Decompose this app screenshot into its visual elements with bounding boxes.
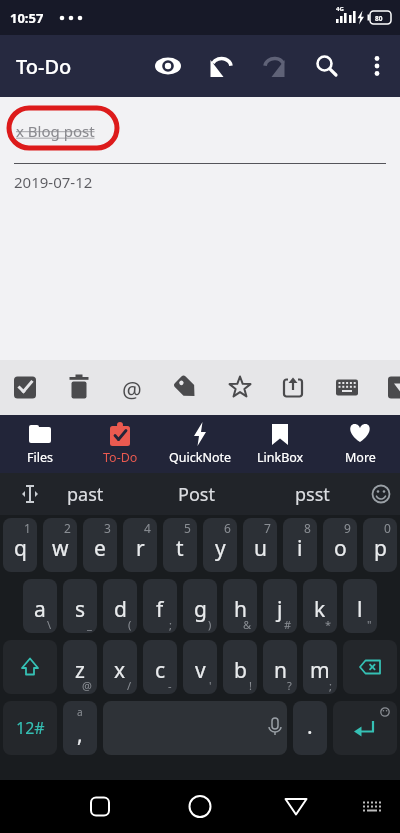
button[interactable] xyxy=(53,360,106,415)
button[interactable] xyxy=(72,780,128,833)
button[interactable] xyxy=(3,640,57,694)
button[interactable]: j xyxy=(263,579,297,633)
staticText: f xyxy=(156,595,164,624)
staticText: 6 xyxy=(224,520,231,536)
button[interactable]: @ xyxy=(118,374,146,402)
button[interactable]: 12# xyxy=(3,701,57,755)
button[interactable]: Files xyxy=(0,415,80,473)
staticText: / xyxy=(127,678,132,693)
button[interactable] xyxy=(103,701,287,755)
button[interactable]: m xyxy=(303,640,337,694)
staticText: b xyxy=(234,656,247,685)
staticText: g xyxy=(194,595,207,624)
button[interactable]: n xyxy=(263,640,297,694)
staticText: a xyxy=(34,595,46,624)
button[interactable]: e xyxy=(83,518,117,572)
staticText: j xyxy=(277,595,283,624)
staticText: x xyxy=(114,656,126,685)
button[interactable]: past xyxy=(45,473,125,515)
staticText: 2019-07-12 xyxy=(14,172,93,192)
button[interactable] xyxy=(172,780,228,833)
button[interactable]: v xyxy=(183,640,217,694)
button[interactable] xyxy=(268,780,324,833)
button[interactable] xyxy=(247,35,300,97)
staticText: 10:57 xyxy=(10,9,44,27)
button[interactable]: f xyxy=(143,579,177,633)
button[interactable]: , xyxy=(63,701,97,755)
button[interactable]: psst xyxy=(272,473,352,515)
button[interactable]: p xyxy=(363,518,397,572)
staticText: ! xyxy=(249,678,252,693)
button[interactable] xyxy=(350,473,400,515)
button[interactable]: y xyxy=(203,518,237,572)
staticText: 12# xyxy=(16,717,45,739)
staticText: ; xyxy=(169,617,172,632)
button[interactable]: q xyxy=(3,518,37,572)
staticText: 8 xyxy=(304,520,311,536)
button[interactable]: More xyxy=(320,415,400,473)
button[interactable] xyxy=(0,360,53,415)
button[interactable]: QuickNote xyxy=(160,415,240,473)
button[interactable]: i xyxy=(283,518,317,572)
button[interactable]: a xyxy=(23,579,57,633)
staticText: ( xyxy=(128,617,132,632)
staticText: To-Do xyxy=(103,449,138,466)
button[interactable] xyxy=(353,35,400,97)
button[interactable]: h xyxy=(223,579,257,633)
button[interactable]: r xyxy=(123,518,157,572)
button[interactable]: x xyxy=(103,640,137,694)
button[interactable]: . xyxy=(293,701,327,755)
button[interactable]: g xyxy=(183,579,217,633)
staticText: LinkBox xyxy=(257,449,304,466)
button[interactable]: s xyxy=(63,579,97,633)
button[interactable] xyxy=(141,35,194,97)
staticText: 5 xyxy=(184,520,191,536)
button[interactable] xyxy=(300,35,353,97)
staticText: 4 xyxy=(144,520,151,536)
staticText: # xyxy=(284,617,292,632)
staticText: l xyxy=(357,595,363,624)
staticText: @ xyxy=(122,374,142,402)
button[interactable]: z xyxy=(63,640,97,694)
button[interactable] xyxy=(375,360,400,415)
staticText: 80 xyxy=(375,14,383,23)
button[interactable] xyxy=(0,473,56,515)
staticText: p xyxy=(374,534,387,563)
staticText: - xyxy=(168,678,172,693)
staticText: 0 xyxy=(384,520,391,536)
button[interactable] xyxy=(159,360,213,415)
button[interactable] xyxy=(343,640,397,694)
button[interactable] xyxy=(194,35,247,97)
staticText: psst xyxy=(295,482,330,507)
button[interactable]: LinkBox xyxy=(240,415,320,473)
staticText: 4G xyxy=(336,5,344,13)
button[interactable]: l xyxy=(343,579,377,633)
staticText: & xyxy=(243,617,252,632)
staticText: m xyxy=(310,656,330,685)
button[interactable]: x Blog post xyxy=(0,97,400,163)
button[interactable]: b xyxy=(223,640,257,694)
staticText: More xyxy=(345,449,376,466)
button[interactable] xyxy=(351,780,391,833)
button[interactable]: u xyxy=(243,518,277,572)
staticText: 2 xyxy=(64,520,71,536)
button[interactable]: w xyxy=(43,518,77,572)
button[interactable] xyxy=(106,360,159,415)
button[interactable] xyxy=(321,360,375,415)
button[interactable] xyxy=(333,701,397,755)
button[interactable]: c xyxy=(143,640,177,694)
button[interactable]: k xyxy=(303,579,337,633)
staticText: 7 xyxy=(264,520,271,536)
button[interactable]: Post xyxy=(156,473,236,515)
button[interactable]: d xyxy=(103,579,137,633)
button[interactable]: To-Do xyxy=(80,415,160,473)
staticText: n xyxy=(274,656,287,685)
button[interactable] xyxy=(267,360,321,415)
staticText: Post xyxy=(178,482,215,507)
button[interactable] xyxy=(213,360,267,415)
button[interactable]: t xyxy=(163,518,197,572)
button[interactable]: o xyxy=(323,518,357,572)
staticText: @ xyxy=(82,678,92,693)
staticText: e xyxy=(94,534,106,563)
staticText: ? xyxy=(287,678,292,693)
